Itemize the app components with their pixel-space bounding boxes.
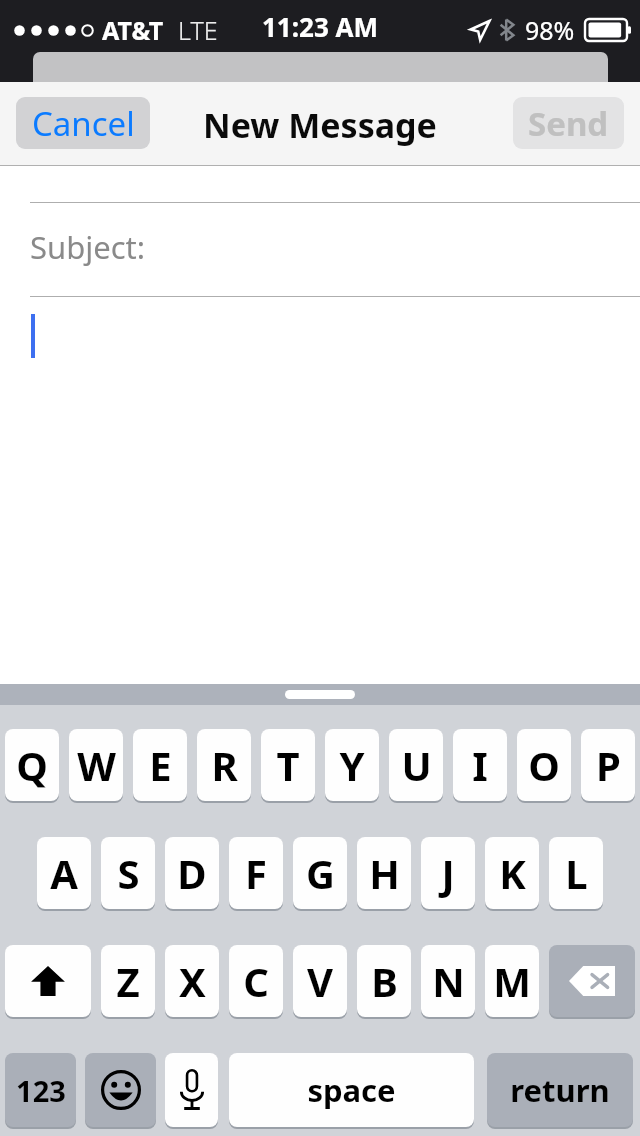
staticText: D — [177, 846, 207, 900]
button[interactable]: K — [485, 837, 539, 909]
button[interactable]: V — [293, 945, 347, 1017]
button[interactable]: return — [487, 1053, 633, 1127]
staticText: X — [179, 954, 206, 1008]
button[interactable]: L — [549, 837, 603, 909]
staticText: S — [117, 846, 140, 900]
button[interactable]: M — [485, 945, 539, 1017]
button[interactable]: I — [453, 729, 507, 801]
staticText: New Message — [203, 102, 437, 148]
staticText: O — [528, 738, 560, 792]
button[interactable]: Q — [5, 729, 59, 801]
button[interactable]: H — [357, 837, 411, 909]
button[interactable]: Dictation — [165, 1053, 218, 1127]
button[interactable]: G — [293, 837, 347, 909]
button[interactable]: T — [261, 729, 315, 801]
staticText: return — [510, 1069, 610, 1111]
button[interactable]: D — [165, 837, 219, 909]
button[interactable]: N — [421, 945, 475, 1017]
button[interactable]: Cancel — [16, 97, 150, 149]
staticText: 98% — [525, 13, 575, 47]
button[interactable]: W — [69, 729, 123, 801]
staticText: Z — [116, 954, 140, 1008]
staticText: B — [371, 954, 398, 1008]
button[interactable]: X — [165, 945, 219, 1017]
button[interactable]: J — [421, 837, 475, 909]
staticText: C — [243, 954, 269, 1008]
staticText: A — [50, 846, 78, 900]
button[interactable]: 123 — [5, 1053, 76, 1127]
staticText: W — [77, 738, 116, 792]
button[interactable]: U — [389, 729, 443, 801]
staticText: Y — [339, 738, 365, 792]
staticText: Q — [16, 738, 48, 792]
button[interactable]: Hide keyboard — [285, 690, 355, 699]
staticText: Subject: — [30, 226, 146, 268]
button[interactable]: Z — [101, 945, 155, 1017]
button[interactable]: Emoji — [85, 1053, 156, 1127]
staticText: T — [276, 738, 300, 792]
staticText: R — [211, 738, 238, 792]
button[interactable]: P — [581, 729, 635, 801]
button[interactable]: Send — [513, 97, 624, 149]
button[interactable]: Subject: — [30, 226, 640, 296]
staticText: N — [432, 954, 465, 1008]
staticText: G — [306, 846, 335, 900]
staticText: Send — [528, 101, 609, 146]
staticText: J — [441, 846, 455, 900]
button[interactable]: O — [517, 729, 571, 801]
button[interactable]: F — [229, 837, 283, 909]
staticText: F — [245, 846, 267, 900]
staticText: I — [472, 738, 488, 792]
button[interactable]: Y — [325, 729, 379, 801]
button[interactable]: R — [197, 729, 251, 801]
staticText: E — [149, 738, 172, 792]
staticText: M — [493, 954, 531, 1008]
button[interactable]: C — [229, 945, 283, 1017]
staticText: U — [401, 738, 432, 792]
staticText: 123 — [16, 1071, 66, 1110]
staticText: Cancel — [32, 101, 135, 146]
staticText: V — [307, 954, 333, 1008]
button[interactable]: Shift — [5, 945, 91, 1017]
button[interactable]: E — [133, 729, 187, 801]
staticText: AT&T — [102, 13, 164, 47]
staticText: H — [369, 846, 400, 900]
staticText: K — [499, 846, 526, 900]
button[interactable]: S — [101, 837, 155, 909]
staticText: L — [565, 846, 588, 900]
staticText: P — [596, 738, 621, 792]
staticText: 11:23 AM — [262, 9, 379, 44]
button[interactable]: space — [229, 1053, 474, 1127]
staticText: LTE — [178, 13, 218, 47]
button[interactable]: Backspace — [549, 945, 635, 1017]
button[interactable]: B — [357, 945, 411, 1017]
button[interactable]: A — [37, 837, 91, 909]
staticText: space — [307, 1069, 396, 1111]
